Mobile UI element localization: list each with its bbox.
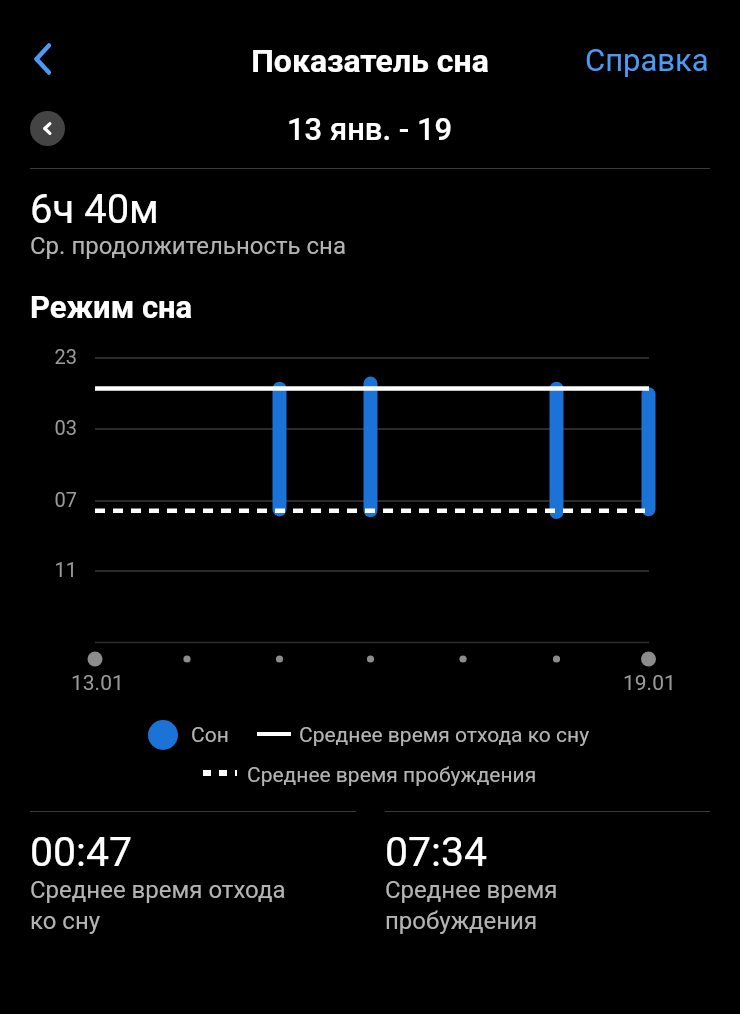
staticText: Справка bbox=[585, 42, 709, 78]
staticText: Среднее время пробуждения bbox=[385, 876, 558, 935]
staticText: 00:47 bbox=[30, 828, 133, 876]
staticText: 11 bbox=[37, 558, 77, 581]
staticText: Режим сна bbox=[30, 289, 193, 325]
staticText: Ср. продолжительность сна bbox=[30, 232, 346, 260]
staticText: 23 bbox=[37, 345, 77, 368]
staticText: 07:34 bbox=[385, 828, 488, 876]
staticText: Среднее время отхода ко сну bbox=[299, 723, 590, 748]
staticText: 13.01 bbox=[71, 671, 124, 696]
staticText: 6ч 40м bbox=[30, 186, 159, 233]
staticText: 07 bbox=[37, 488, 77, 511]
button[interactable]: Сон bbox=[140, 716, 240, 754]
button[interactable] bbox=[385, 800, 710, 950]
staticText: Среднее время отхода ко сну bbox=[30, 876, 286, 935]
staticText: 03 bbox=[37, 416, 77, 439]
button[interactable]: Справка bbox=[567, 30, 727, 90]
staticText: Среднее время пробуждения bbox=[247, 763, 537, 788]
staticText: 19.01 bbox=[623, 671, 676, 696]
button[interactable]: Back bbox=[6, 23, 82, 95]
staticText: Показатель сна bbox=[0, 42, 740, 80]
button[interactable]: Среднее время пробуждения bbox=[195, 756, 547, 794]
button[interactable] bbox=[30, 800, 356, 950]
staticText: Сон bbox=[191, 723, 229, 748]
staticText: 13 янв. - 19 bbox=[287, 111, 453, 147]
button[interactable]: 13 янв. - 19 bbox=[230, 104, 510, 154]
button[interactable]: Previous week bbox=[30, 111, 65, 146]
button[interactable]: Среднее время отхода ко сну bbox=[250, 716, 596, 754]
